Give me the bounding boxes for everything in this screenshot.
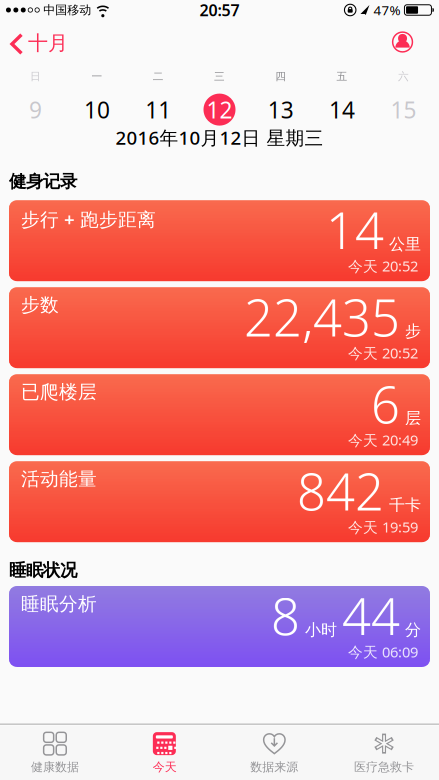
staticText: 842: [297, 457, 384, 524]
button[interactable]: 数据来源: [219, 732, 329, 774]
button[interactable]: 医疗急救卡: [329, 732, 439, 774]
staticText: 13: [268, 95, 294, 125]
staticText: 步数: [21, 294, 59, 317]
staticText: 十月: [28, 31, 68, 55]
staticText: 健康数据: [31, 760, 79, 774]
staticText: 数据来源: [250, 760, 298, 774]
button[interactable]: 11: [127, 93, 189, 127]
button[interactable]: 返回 十月: [10, 31, 68, 57]
button[interactable]: 睡眠分析: [9, 586, 430, 667]
button[interactable]: 活动能量: [9, 461, 430, 542]
staticText: 三: [214, 70, 225, 83]
staticText: 层: [405, 408, 421, 428]
staticText: 9: [29, 95, 42, 125]
button[interactable]: 14: [311, 93, 373, 127]
staticText: 10: [84, 95, 110, 125]
button[interactable]: 12: [189, 93, 250, 127]
staticText: 今天 06:09: [348, 642, 418, 661]
staticText: 今天 20:49: [348, 430, 418, 450]
staticText: 小时: [305, 620, 337, 640]
staticText: 44: [342, 582, 400, 649]
staticText: 中国移动: [43, 3, 91, 17]
staticText: 8: [271, 582, 300, 649]
button[interactable]: 13: [250, 93, 311, 127]
button[interactable]: 健康数据: [0, 732, 110, 774]
button[interactable]: 健康资料: [392, 33, 413, 54]
button[interactable]: 步数: [9, 287, 430, 368]
staticText: 已爬楼层: [21, 381, 97, 404]
staticText: 活动能量: [21, 468, 97, 491]
staticText: 公里: [389, 234, 421, 254]
staticText: 睡眠分析: [21, 592, 97, 615]
staticText: 今天 19:59: [348, 517, 418, 537]
staticText: 二: [153, 70, 164, 83]
staticText: 四: [275, 70, 286, 83]
staticText: 一: [91, 70, 102, 83]
staticText: 47%: [373, 1, 400, 19]
button[interactable]: 15: [373, 93, 434, 127]
staticText: 22,435: [244, 283, 400, 350]
staticText: 健身记录: [9, 171, 77, 192]
staticText: 2016年10月12日 星期三: [115, 125, 323, 150]
staticText: 日: [30, 70, 41, 83]
button[interactable]: 步行 + 跑步距离: [9, 200, 430, 281]
staticText: 睡眠状况: [9, 560, 77, 581]
staticText: 6: [371, 370, 400, 437]
staticText: 步: [405, 321, 421, 341]
staticText: 六: [398, 70, 409, 83]
staticText: 12: [206, 95, 232, 125]
staticText: 14: [329, 95, 355, 125]
button[interactable]: 已爬楼层: [9, 374, 430, 455]
button[interactable]: 10: [66, 93, 127, 127]
staticText: 20:57: [199, 0, 239, 21]
staticText: 步行 + 跑步距离: [21, 207, 156, 231]
staticText: 15: [390, 95, 416, 125]
staticText: 医疗急救卡: [354, 760, 414, 774]
staticText: 千卡: [389, 495, 421, 515]
staticText: 今天 20:52: [348, 343, 418, 363]
staticText: 今天 20:52: [348, 256, 418, 276]
staticText: 五: [337, 70, 348, 83]
staticText: 分: [405, 620, 421, 640]
staticText: 今天: [153, 760, 177, 774]
button[interactable]: 9: [5, 93, 66, 127]
button[interactable]: 今天: [110, 732, 219, 774]
staticText: 11: [145, 95, 171, 125]
staticText: 14: [326, 196, 384, 263]
